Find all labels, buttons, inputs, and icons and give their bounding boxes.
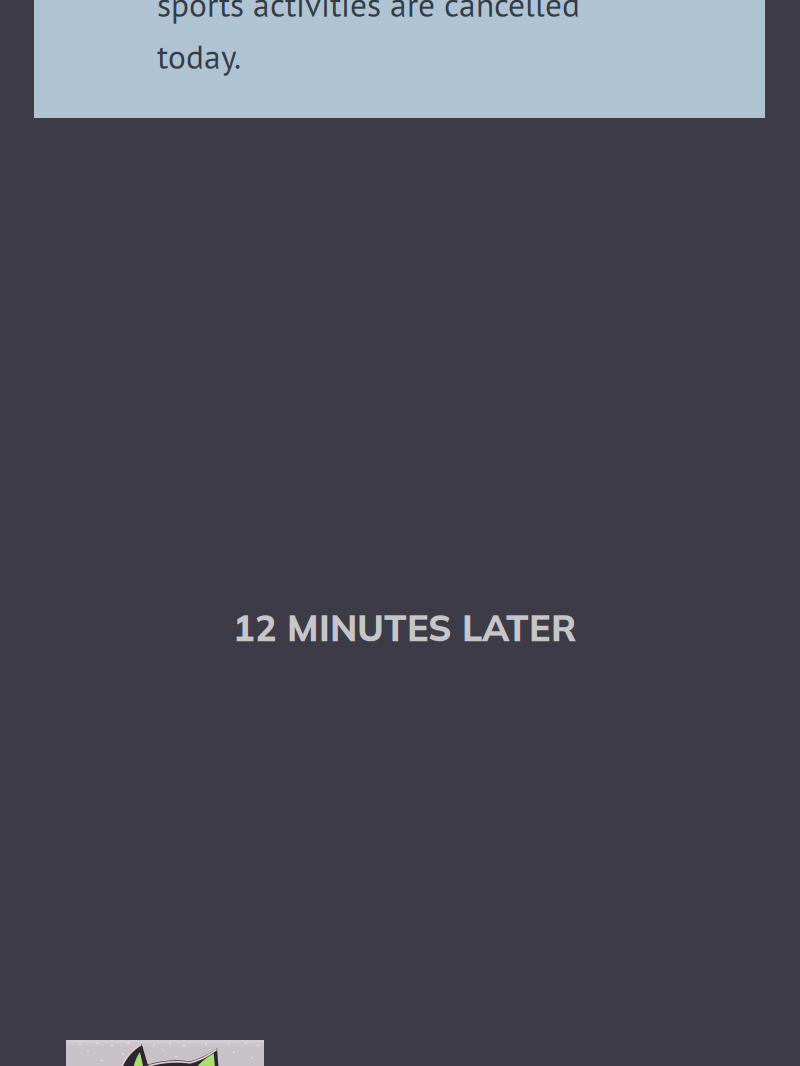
button[interactable]: Panel: the cat appears: [66, 1040, 264, 1066]
button[interactable]: Panel: sports activities are cancelled t…: [34, 0, 765, 118]
staticText: 12 MINUTES LATER: [233, 605, 576, 650]
staticText: today.: [157, 35, 241, 78]
staticText: sports activities are cancelled: [157, 0, 580, 26]
